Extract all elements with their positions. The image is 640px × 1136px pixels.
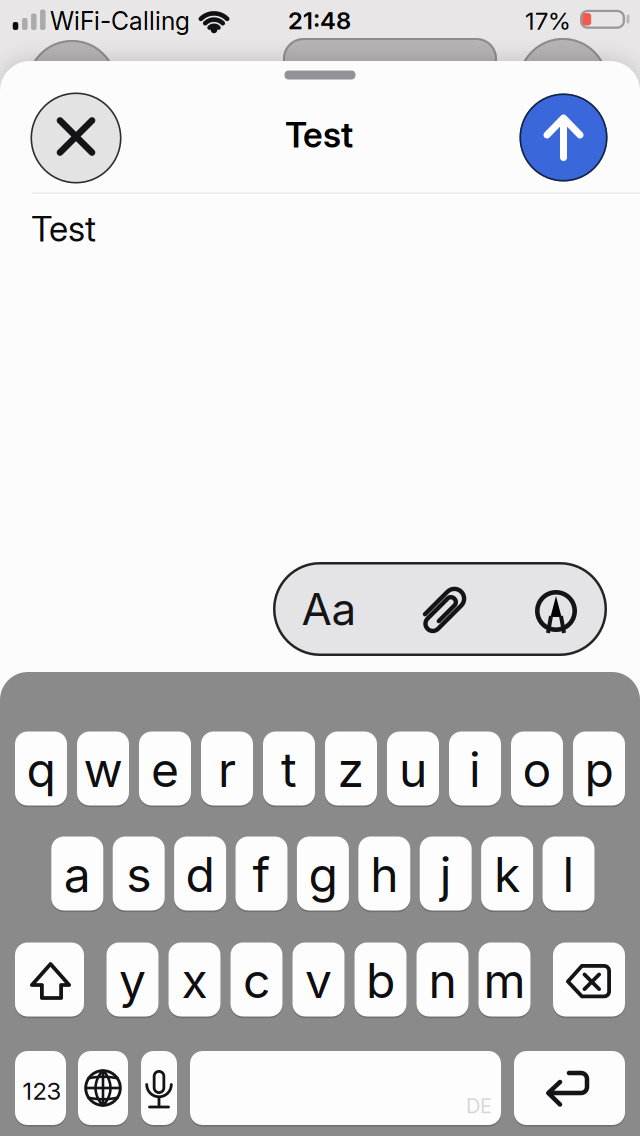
- staticText: z: [337, 740, 364, 799]
- button[interactable]: j: [420, 836, 472, 910]
- staticText: o: [522, 740, 551, 799]
- staticText: 123: [22, 1076, 61, 1105]
- button[interactable]: Delete: [553, 942, 625, 1016]
- staticText: c: [243, 951, 270, 1010]
- button[interactable]: g: [297, 836, 349, 910]
- staticText: m: [483, 951, 525, 1010]
- staticText: e: [151, 740, 179, 799]
- staticText: p: [584, 740, 613, 799]
- staticText: d: [186, 845, 215, 904]
- staticText: n: [428, 951, 456, 1010]
- button[interactable]: Space: [190, 1051, 501, 1125]
- button[interactable]: i: [449, 731, 501, 805]
- button[interactable]: Markup: [506, 563, 606, 657]
- staticText: v: [305, 951, 332, 1010]
- button[interactable]: e: [139, 731, 191, 805]
- button[interactable]: Next keyboard: [78, 1051, 128, 1125]
- staticText: DE: [466, 1094, 492, 1118]
- button[interactable]: z: [325, 731, 377, 805]
- button[interactable]: t: [263, 731, 315, 805]
- button[interactable]: Close: [30, 92, 121, 183]
- staticText: g: [308, 845, 337, 904]
- button[interactable]: v: [292, 942, 344, 1016]
- button[interactable]: m: [478, 942, 530, 1016]
- button[interactable]: r: [201, 731, 253, 805]
- staticText: WiFi-Calling: [50, 6, 190, 36]
- staticText: q: [26, 740, 55, 799]
- button[interactable]: 123: [15, 1051, 66, 1125]
- button[interactable]: o: [511, 731, 563, 805]
- button[interactable]: q: [15, 731, 67, 805]
- staticText: i: [469, 740, 481, 799]
- button[interactable]: a: [51, 836, 103, 910]
- staticText: b: [366, 951, 395, 1010]
- button[interactable]: k: [481, 836, 533, 910]
- button[interactable]: b: [354, 942, 406, 1016]
- staticText: h: [370, 845, 398, 904]
- staticText: j: [440, 845, 452, 904]
- button[interactable]: Return: [514, 1051, 625, 1125]
- staticText: w: [83, 740, 122, 799]
- button[interactable]: d: [174, 836, 226, 910]
- staticText: Test: [285, 114, 353, 156]
- button[interactable]: Format: [279, 562, 379, 656]
- button[interactable]: p: [573, 731, 625, 805]
- staticText: u: [399, 740, 427, 799]
- button[interactable]: l: [542, 836, 594, 910]
- button[interactable]: f: [235, 836, 287, 910]
- button[interactable]: y: [106, 942, 158, 1016]
- button[interactable]: Send: [519, 93, 607, 181]
- button[interactable]: c: [230, 942, 282, 1016]
- staticText: a: [64, 845, 91, 904]
- button[interactable]: u: [387, 731, 439, 805]
- staticText: Test: [31, 208, 96, 250]
- staticText: t: [281, 740, 297, 799]
- button[interactable]: Shift: [15, 942, 84, 1016]
- staticText: Aa: [301, 582, 356, 636]
- button[interactable]: Attach: [394, 562, 494, 656]
- button[interactable]: w: [77, 731, 129, 805]
- staticText: l: [562, 845, 574, 904]
- staticText: k: [494, 845, 520, 904]
- button[interactable]: n: [416, 942, 468, 1016]
- button[interactable]: Dictation: [141, 1051, 177, 1125]
- button[interactable]: h: [358, 836, 410, 910]
- staticText: s: [126, 845, 151, 904]
- staticText: 17%: [525, 6, 571, 35]
- button[interactable]: x: [168, 942, 220, 1016]
- staticText: y: [119, 951, 146, 1010]
- button[interactable]: s: [113, 836, 165, 910]
- staticText: r: [218, 740, 236, 799]
- staticText: x: [181, 951, 207, 1010]
- staticText: f: [252, 845, 270, 904]
- staticText: 21:48: [288, 6, 351, 35]
